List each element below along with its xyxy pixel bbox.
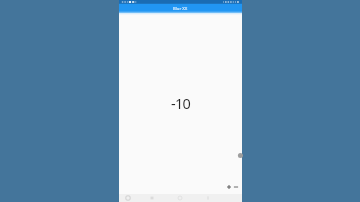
button[interactable]: Back (142, 194, 162, 202)
button[interactable]: Zoom out (232, 183, 240, 191)
button[interactable]: Hide keyboard (118, 194, 138, 202)
button[interactable]: Blur XX (119, 4, 242, 13)
staticText: -10 (171, 93, 191, 113)
button[interactable]: Zoom in (225, 183, 233, 191)
staticText: Blur XX (173, 6, 188, 12)
